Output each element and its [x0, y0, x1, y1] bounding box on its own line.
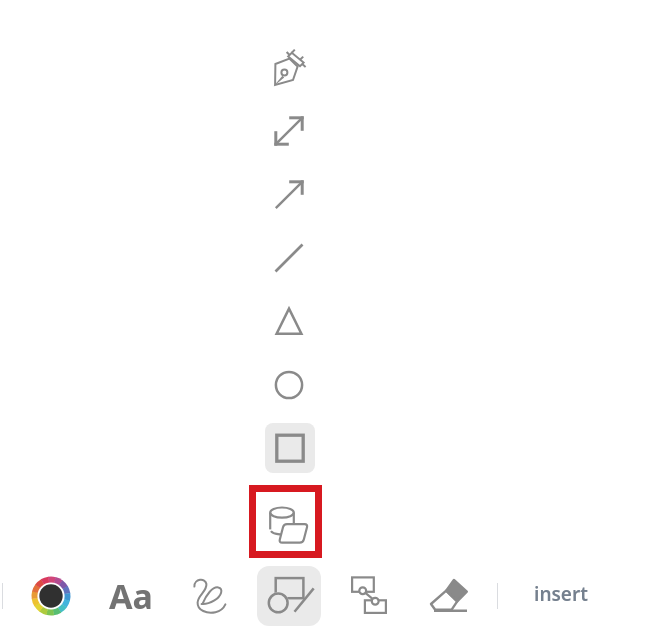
button[interactable]: Square: [265, 423, 315, 473]
button[interactable]: Aa: [106, 571, 156, 621]
staticText: insert: [534, 581, 588, 607]
button[interactable]: Color: [26, 571, 76, 621]
button[interactable]: Circle: [258, 354, 320, 416]
button[interactable]: Connector: [344, 571, 394, 621]
button[interactable]: 3D shapes: [249, 485, 322, 558]
button[interactable]: Arrow: [258, 164, 320, 226]
button[interactable]: Shapes: [257, 566, 321, 626]
button[interactable]: insert: [520, 574, 602, 614]
button[interactable]: Pen: [256, 42, 318, 104]
button[interactable]: Eraser: [424, 571, 474, 621]
button[interactable]: Ink: [185, 571, 235, 621]
staticText: Aa: [109, 573, 153, 619]
button[interactable]: Triangle: [258, 291, 320, 353]
button[interactable]: Line: [258, 227, 320, 289]
button[interactable]: Double arrow: [258, 100, 320, 162]
